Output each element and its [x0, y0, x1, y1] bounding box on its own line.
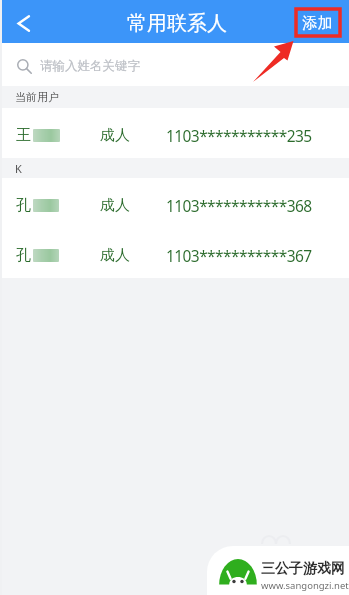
staticText: 三公子游戏网 [261, 560, 345, 578]
button[interactable]: 孔 [0, 178, 349, 228]
staticText: 成人 [100, 126, 130, 145]
staticText: 孔 [16, 246, 31, 265]
staticText: 王 [16, 126, 31, 145]
staticText: 1103***********367 [166, 245, 312, 266]
staticText: 添加 [302, 14, 333, 33]
staticText: www.sangongzi.net [261, 579, 349, 592]
staticText: 成人 [100, 196, 130, 215]
staticText: 常用联系人 [127, 11, 227, 36]
button[interactable]: 添加 [292, 8, 343, 39]
staticText: 请输入姓名关键字 [40, 58, 140, 74]
staticText: 成人 [100, 246, 130, 265]
button[interactable]: 王 [0, 108, 349, 158]
button[interactable]: 孔 [0, 228, 349, 278]
staticText: 当前用户 [15, 90, 59, 104]
staticText: 孔 [16, 196, 31, 215]
button[interactable]: Back [0, 0, 46, 43]
staticText: 1103***********235 [166, 125, 312, 146]
staticText: K [15, 161, 22, 176]
button[interactable]: 请输入姓名关键字 [0, 43, 349, 86]
staticText: 1103***********368 [166, 195, 312, 216]
